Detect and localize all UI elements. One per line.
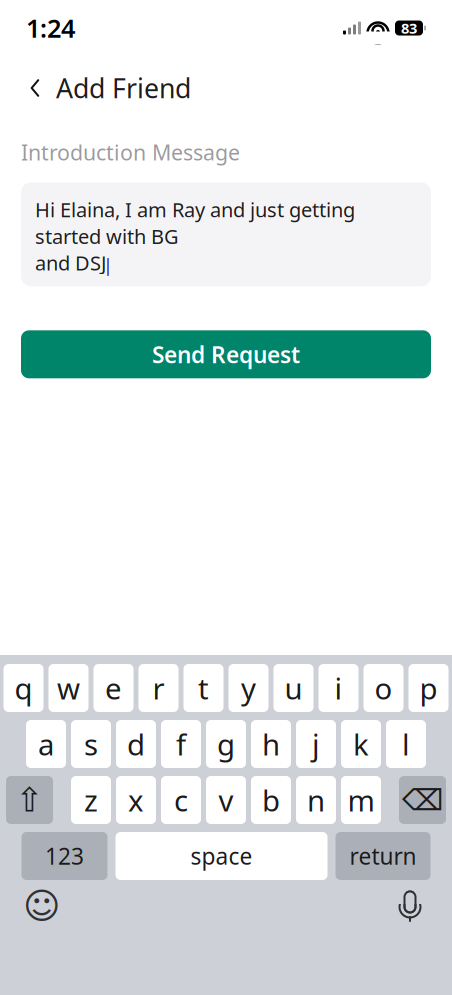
button[interactable]: i: [318, 664, 358, 712]
button[interactable]: m: [341, 776, 381, 824]
staticText: r: [152, 668, 164, 707]
button[interactable]: f: [161, 720, 201, 768]
staticText: m: [347, 780, 374, 819]
staticText: z: [84, 780, 98, 819]
staticText: j: [312, 724, 320, 763]
staticText: h: [262, 724, 280, 763]
button[interactable]: v: [206, 776, 246, 824]
staticText: return: [349, 841, 416, 871]
staticText: e: [105, 668, 122, 707]
button[interactable]: a: [26, 720, 66, 768]
staticText: y: [241, 668, 256, 707]
staticText: ⇧: [15, 781, 43, 819]
staticText: Send Request: [152, 339, 300, 369]
staticText: d: [127, 724, 145, 763]
button[interactable]: j: [296, 720, 336, 768]
staticText: b: [262, 780, 280, 819]
button[interactable]: z: [71, 776, 111, 824]
staticText: k: [353, 724, 369, 763]
staticText: w: [57, 668, 80, 707]
staticText: a: [38, 724, 54, 763]
staticText: s: [84, 724, 98, 763]
button[interactable]: Delete: [399, 776, 446, 824]
staticText: t: [198, 668, 209, 707]
button[interactable]: return: [335, 832, 430, 880]
staticText: space: [190, 841, 252, 871]
staticText: f: [176, 724, 186, 763]
button[interactable]: Back: [18, 68, 52, 108]
button[interactable]: n: [296, 776, 336, 824]
button[interactable]: w: [48, 664, 88, 712]
button[interactable]: y: [228, 664, 268, 712]
button[interactable]: x: [116, 776, 156, 824]
staticText: Introduction Message: [21, 138, 240, 166]
button[interactable]: Shift: [6, 776, 53, 824]
staticText: n: [307, 780, 325, 819]
button[interactable]: e: [93, 664, 133, 712]
staticText: 1:24: [26, 11, 75, 45]
staticText: g: [217, 724, 235, 763]
staticText: and DSJ: [35, 249, 106, 276]
button[interactable]: g: [206, 720, 246, 768]
staticText: 123: [45, 841, 84, 871]
button[interactable]: Emoji: [22, 886, 62, 926]
staticText: ☺: [23, 886, 61, 926]
staticText: x: [128, 780, 144, 819]
button[interactable]: h: [251, 720, 291, 768]
staticText: q: [14, 668, 32, 707]
button[interactable]: space: [115, 832, 327, 880]
button[interactable]: t: [183, 664, 223, 712]
staticText: u: [284, 668, 302, 707]
staticText: o: [374, 668, 392, 707]
button[interactable]: u: [273, 664, 313, 712]
staticText: l: [402, 724, 410, 763]
button[interactable]: r: [138, 664, 178, 712]
button[interactable]: s: [71, 720, 111, 768]
button[interactable]: d: [116, 720, 156, 768]
button[interactable]: Send Request: [21, 330, 431, 378]
button[interactable]: 123: [21, 832, 107, 880]
staticText: 83: [401, 18, 417, 38]
staticText: Add Friend: [56, 70, 191, 106]
button[interactable]: p: [408, 664, 448, 712]
button[interactable]: Dictation: [390, 886, 430, 926]
button[interactable]: l: [386, 720, 426, 768]
button[interactable]: k: [341, 720, 381, 768]
staticText: ⌫: [402, 783, 443, 817]
staticText: v: [218, 780, 233, 819]
button[interactable]: b: [251, 776, 291, 824]
staticText: i: [334, 668, 342, 707]
button[interactable]: o: [363, 664, 403, 712]
staticText: Hi Elaina, I am Ray and just getting sta…: [35, 196, 355, 249]
staticText: c: [174, 780, 188, 819]
button[interactable]: Hi Elaina, I am Ray and just getting sta…: [21, 182, 431, 286]
button[interactable]: q: [3, 664, 43, 712]
button[interactable]: c: [161, 776, 201, 824]
staticText: p: [419, 668, 437, 707]
